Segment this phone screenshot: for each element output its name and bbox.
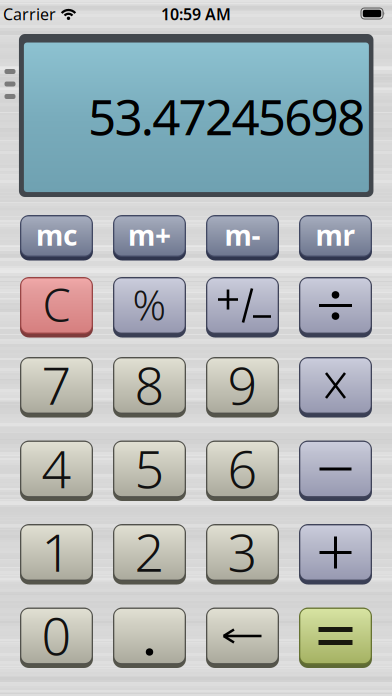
staticText: C (42, 274, 70, 335)
button[interactable]: Backspace (205, 605, 280, 666)
staticText: 6 (227, 433, 257, 503)
staticText: 10:59 AM (161, 3, 231, 25)
staticText: 4 (41, 433, 71, 503)
button[interactable]: m+ (112, 213, 187, 259)
button[interactable]: 9 (205, 355, 280, 416)
button[interactable]: mc (19, 213, 94, 259)
staticText: 9 (227, 350, 257, 419)
staticText: 3 (227, 517, 257, 586)
button[interactable]: Add (298, 522, 373, 583)
button[interactable]: Plus or minus (205, 275, 280, 336)
button[interactable]: m- (205, 213, 280, 259)
button[interactable]: Equals (298, 605, 373, 666)
button[interactable]: 8 (112, 355, 187, 416)
staticText: m- (224, 216, 260, 254)
button[interactable]: Percent (112, 275, 187, 336)
staticText: 2 (134, 517, 164, 586)
button[interactable]: 6 (205, 438, 280, 499)
button[interactable]: 2 (112, 522, 187, 583)
button[interactable]: 0 (19, 605, 94, 666)
staticText: Carrier (3, 3, 56, 25)
staticText: mr (315, 216, 355, 254)
staticText: 1 (41, 517, 71, 586)
button[interactable]: C (19, 275, 94, 336)
button[interactable]: 7 (19, 355, 94, 416)
button[interactable]: 3 (205, 522, 280, 583)
staticText: mc (36, 216, 77, 254)
button[interactable]: Divide (298, 275, 373, 336)
button[interactable]: Multiply (298, 355, 373, 416)
button[interactable]: Decimal point (112, 605, 187, 666)
staticText: % (132, 277, 166, 332)
button[interactable]: mr (298, 213, 373, 259)
staticText: 5 (134, 433, 164, 503)
staticText: 0 (41, 600, 71, 670)
button[interactable]: Subtract (298, 438, 373, 499)
staticText: 8 (134, 350, 164, 419)
staticText: 7 (41, 350, 71, 419)
staticText: 53.47245698 (88, 83, 365, 149)
button[interactable]: 1 (19, 522, 94, 583)
button[interactable]: 4 (19, 438, 94, 499)
staticText: m+ (128, 216, 171, 254)
button[interactable]: 5 (112, 438, 187, 499)
